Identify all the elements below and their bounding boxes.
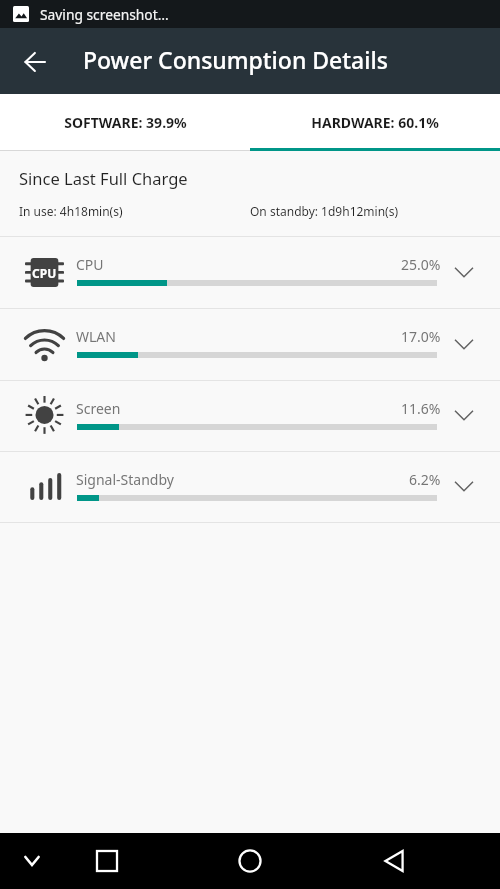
staticText: Screen [76,399,121,418]
staticText: 25.0% [401,255,441,274]
button[interactable]: Back [374,841,414,881]
staticText: Signal-Standby [76,470,174,489]
staticText: 11.6% [401,399,441,418]
button[interactable]: CPU [0,237,500,308]
staticText: On standby: 1d9h12min(s) [250,203,399,219]
staticText: WLAN [76,327,116,346]
staticText: Saving screenshot… [40,5,169,24]
staticText: CPU [76,255,104,274]
button[interactable]: Expand Signal-Standby [444,465,484,505]
button[interactable]: Expand WLAN [444,323,484,363]
button[interactable]: Back [14,41,54,81]
staticText: 17.0% [401,327,441,346]
button[interactable]: Signal-Standby [0,452,500,522]
button[interactable]: Recents [87,841,127,881]
staticText: Since Last Full Charge [19,167,188,189]
button[interactable]: WLAN [0,309,500,380]
staticText: 6.2% [409,470,441,489]
staticText: Power Consumption Details [83,44,388,75]
staticText: HARDWARE: 60.1% [311,113,439,132]
button[interactable]: HARDWARE: 60.1% [250,94,500,151]
staticText: SOFTWARE: 39.9% [64,113,187,132]
staticText: CPU [32,265,57,281]
button[interactable]: Expand Screen [444,394,484,434]
button[interactable]: Hide keyboard [12,841,52,881]
button[interactable]: Home [230,841,270,881]
button[interactable]: SOFTWARE: 39.9% [0,94,250,151]
staticText: In use: 4h18min(s) [19,203,123,219]
button[interactable]: Screen [0,381,500,451]
button[interactable]: Expand CPU [444,251,484,291]
